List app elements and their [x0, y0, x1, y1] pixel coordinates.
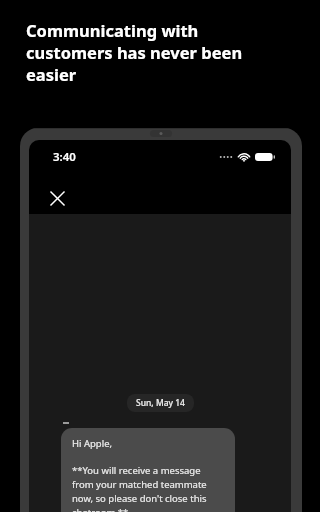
button[interactable]: Hi Apple, — [61, 428, 235, 512]
staticText: Sun, May 14 — [136, 397, 185, 409]
staticText: **You will receive a message from your m… — [72, 464, 224, 512]
staticText: Hi Apple, — [72, 437, 113, 450]
staticText: Communicating with — [26, 19, 199, 41]
button[interactable]: Close — [41, 182, 73, 214]
staticText: 3:40 — [53, 149, 76, 165]
staticText: easier — [26, 63, 77, 85]
staticText: customers has never been — [26, 41, 243, 63]
